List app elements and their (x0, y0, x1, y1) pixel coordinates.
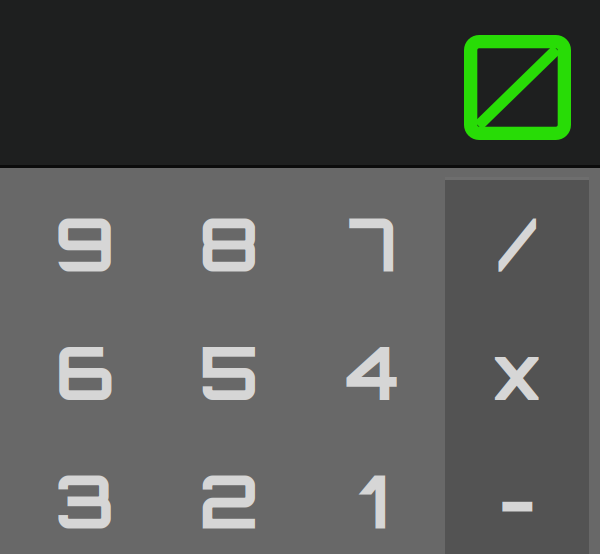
staticText: 3 (54, 454, 115, 546)
button[interactable]: 4 (301, 307, 445, 436)
button[interactable]: 8 (157, 179, 301, 307)
button[interactable]: Clear (464, 35, 571, 140)
button[interactable]: 5 (157, 307, 301, 436)
staticText: 4 (346, 326, 400, 418)
staticText: / (498, 197, 536, 289)
staticText: 7 (349, 197, 397, 289)
staticText: 6 (55, 326, 115, 418)
button[interactable]: 1 (301, 436, 445, 554)
button[interactable]: / (445, 179, 589, 307)
staticText: 2 (198, 454, 259, 546)
staticText: x (491, 326, 542, 418)
button[interactable]: 2 (157, 436, 301, 554)
staticText: 1 (358, 454, 387, 546)
staticText: 5 (198, 326, 259, 418)
button[interactable]: 3 (13, 436, 157, 554)
staticText: 8 (198, 197, 259, 289)
staticText: - (498, 454, 536, 546)
button[interactable]: - (445, 436, 589, 554)
button[interactable]: 9 (13, 179, 157, 307)
staticText: 9 (54, 197, 115, 289)
button[interactable]: 6 (13, 307, 157, 436)
button[interactable]: 7 (301, 179, 445, 307)
button[interactable]: x (445, 307, 589, 436)
